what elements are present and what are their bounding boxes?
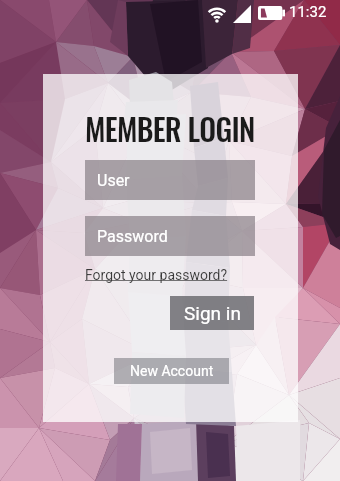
staticText: MEMBER LOGIN	[85, 106, 255, 150]
staticText: Password	[97, 227, 168, 246]
button[interactable]: Forgot your password?	[85, 267, 228, 283]
button[interactable]: Password	[85, 216, 255, 256]
staticText: Sign in	[184, 302, 241, 324]
staticText: New Account	[130, 363, 214, 379]
other: Battery	[258, 6, 285, 20]
button[interactable]: New Account	[114, 358, 229, 384]
staticText: User	[97, 171, 130, 190]
button[interactable]: User	[85, 160, 255, 200]
staticText: 11:32	[289, 3, 327, 21]
other: Cellular signal	[233, 5, 251, 23]
other: Wifi signal	[205, 3, 231, 24]
button[interactable]: Sign in	[170, 296, 254, 330]
